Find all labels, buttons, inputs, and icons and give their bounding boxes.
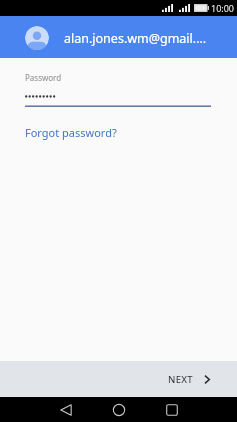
button[interactable]: Recent apps — [151, 397, 193, 422]
staticText: NEXT — [168, 373, 194, 386]
button[interactable]: NEXT — [152, 365, 237, 394]
button[interactable]: alan.jones.wm@gmail.... — [0, 16, 237, 58]
staticText: alan.jones.wm@gmail.... — [64, 30, 207, 47]
button[interactable]: Forgot password? — [0, 123, 127, 142]
button[interactable]: Back — [45, 397, 87, 422]
staticText: Password — [25, 72, 62, 83]
staticText: Forgot password? — [25, 125, 117, 140]
button[interactable]: Home — [98, 397, 140, 422]
staticText: 10:00 — [211, 2, 235, 14]
